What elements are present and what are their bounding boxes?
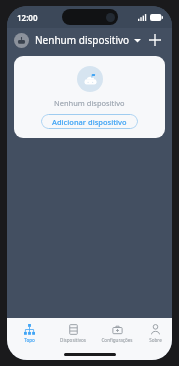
button[interactable]: Account [14,33,29,48]
button[interactable]: Configurações [95,324,139,343]
button[interactable]: Sobre [139,324,172,343]
staticText: 12:00 [17,12,38,23]
button[interactable]: Dispositivos [51,324,95,343]
staticText: Nenhum dispositivo [54,98,125,108]
button[interactable]: Add device [145,30,165,50]
button[interactable]: Adicionar dispositivo [41,114,138,129]
staticText: Topo [24,337,35,343]
staticText: Dispositivos [60,337,86,343]
staticText: Adicionar dispositivo [52,117,127,127]
staticText: Nenhum dispositivo [35,33,130,47]
staticText: Configurações [101,337,133,343]
staticText: Sobre [149,337,162,343]
button[interactable]: Nenhum dispositivo [35,33,141,47]
button[interactable]: Topo [7,324,51,343]
